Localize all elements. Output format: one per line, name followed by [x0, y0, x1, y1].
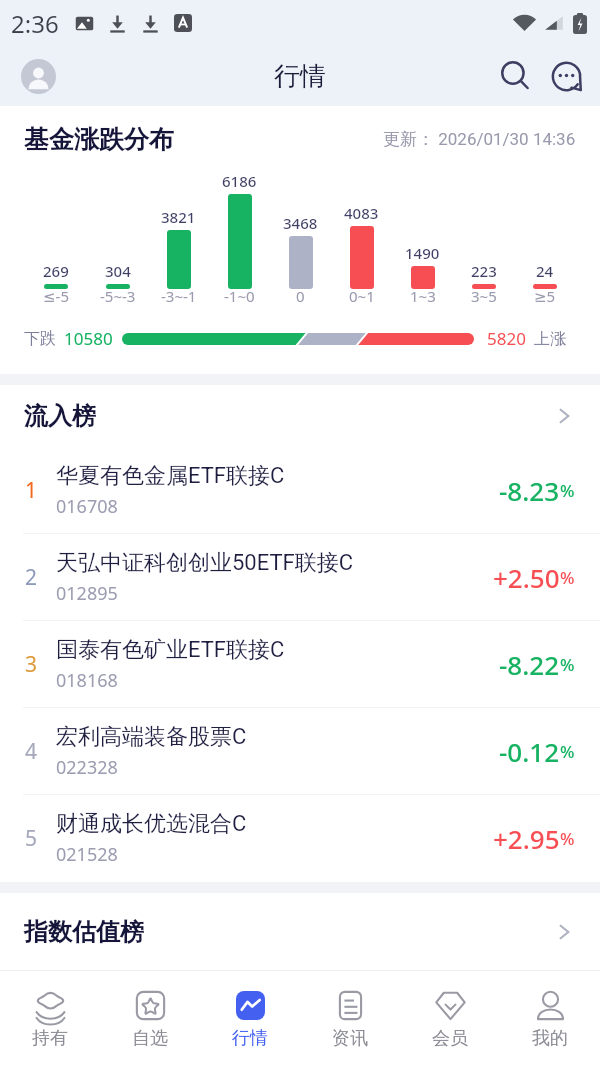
staticText: %	[560, 566, 575, 589]
button[interactable]: 会员	[400, 970, 500, 1066]
staticText: 3468	[283, 213, 318, 233]
staticText: 更新： 2026/01/30 14:36	[383, 129, 576, 150]
button[interactable]: 2	[0, 534, 600, 621]
button[interactable]: 我的	[500, 970, 600, 1066]
button[interactable]: Profile	[21, 59, 56, 94]
staticText: 华夏有色金属ETF联接C	[56, 462, 285, 490]
button[interactable]: 5	[0, 795, 600, 882]
button[interactable]: 自选	[100, 970, 200, 1066]
staticText: %	[560, 827, 575, 850]
staticText: 行情	[274, 60, 326, 93]
staticText: ≤-5	[43, 286, 69, 306]
staticText: 下跌	[24, 329, 56, 349]
staticText: 我的	[532, 1027, 568, 1050]
staticText: 5820	[487, 327, 526, 350]
staticText: 4	[25, 737, 38, 766]
staticText: 0~1	[349, 286, 375, 306]
button[interactable]: Search	[494, 55, 536, 97]
staticText: %	[560, 740, 575, 763]
staticText: -8.22	[499, 647, 560, 682]
staticText: 4083	[344, 203, 379, 223]
staticText: 24	[536, 261, 554, 281]
staticText: -1~0	[224, 286, 255, 306]
button[interactable]: 资讯	[300, 970, 400, 1066]
staticText: 2	[25, 563, 38, 592]
staticText: 流入榜	[24, 401, 96, 431]
staticText: +2.95	[493, 821, 560, 856]
staticText: 223	[471, 261, 497, 281]
staticText: -5~-3	[100, 286, 136, 306]
staticText: 021528	[56, 842, 118, 867]
staticText: 0	[296, 286, 305, 306]
staticText: 会员	[432, 1027, 468, 1050]
staticText: 3	[25, 650, 38, 679]
button[interactable]: 持有	[0, 970, 100, 1066]
staticText: 上涨	[534, 329, 566, 349]
button[interactable]: 指数估值榜	[0, 893, 600, 970]
staticText: 1~3	[410, 286, 436, 306]
staticText: 269	[43, 261, 69, 281]
staticText: 022328	[56, 755, 118, 780]
staticText: +2.50	[493, 560, 560, 595]
staticText: 018168	[56, 668, 118, 693]
staticText: ≥5	[534, 286, 556, 306]
staticText: 指数估值榜	[24, 917, 144, 947]
staticText: 财通成长优选混合C	[56, 810, 247, 838]
staticText: -3~-1	[161, 286, 197, 306]
staticText: 天弘中证科创创业50ETF联接C	[56, 549, 354, 577]
button[interactable]: Messages	[545, 55, 587, 97]
staticText: 1490	[405, 243, 440, 263]
staticText: 资讯	[332, 1027, 368, 1050]
staticText: %	[560, 653, 575, 676]
staticText: 自选	[132, 1027, 168, 1050]
staticText: 国泰有色矿业ETF联接C	[56, 636, 285, 664]
staticText: 6186	[222, 171, 257, 191]
button[interactable]: 3	[0, 621, 600, 708]
button[interactable]: 1	[0, 447, 600, 534]
staticText: 宏利高端装备股票C	[56, 723, 247, 751]
staticText: -8.23	[499, 473, 560, 508]
staticText: 3~5	[471, 286, 497, 306]
staticText: 016708	[56, 494, 118, 519]
staticText: 行情	[232, 1027, 268, 1050]
staticText: %	[560, 479, 575, 502]
staticText: 304	[105, 261, 131, 281]
staticText: 012895	[56, 581, 118, 606]
staticText: -0.12	[499, 734, 560, 769]
staticText: 3821	[161, 207, 196, 227]
staticText: 1	[25, 476, 38, 505]
staticText: 2:36	[11, 7, 59, 40]
staticText: 持有	[32, 1027, 68, 1050]
staticText: 基金涨跌分布	[24, 124, 174, 155]
staticText: 10580	[64, 327, 113, 350]
button[interactable]: 4	[0, 708, 600, 795]
button[interactable]: 流入榜	[0, 385, 600, 447]
staticText: 5	[25, 824, 38, 853]
button[interactable]: 行情	[200, 970, 300, 1066]
